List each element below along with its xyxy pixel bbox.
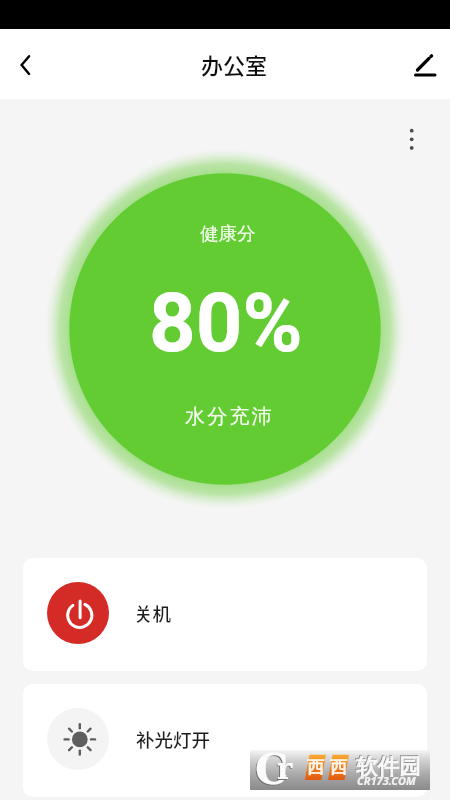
staticText: 健康分: [200, 222, 256, 245]
button[interactable]: More options: [396, 124, 426, 154]
staticText: 补光灯开: [136, 726, 211, 753]
staticText: C: [255, 745, 289, 785]
staticText: r: [276, 753, 292, 787]
staticText: 办公室: [201, 48, 268, 80]
staticText: 西: [307, 757, 324, 778]
button[interactable]: Back: [1, 41, 49, 89]
staticText: 软件园: [356, 753, 421, 780]
staticText: CR173.COM: [357, 773, 416, 788]
staticText: 水分充沛: [185, 404, 274, 429]
button[interactable]: Edit: [402, 42, 450, 90]
staticText: r: [277, 752, 293, 786]
button[interactable]: 关机: [23, 558, 427, 671]
staticText: C: [254, 746, 288, 786]
staticText: 关机: [134, 600, 172, 627]
staticText: 软件园: [355, 752, 420, 779]
staticText: 西: [330, 757, 347, 778]
button[interactable]: 补光灯开: [23, 684, 427, 797]
staticText: 80%: [149, 275, 303, 371]
